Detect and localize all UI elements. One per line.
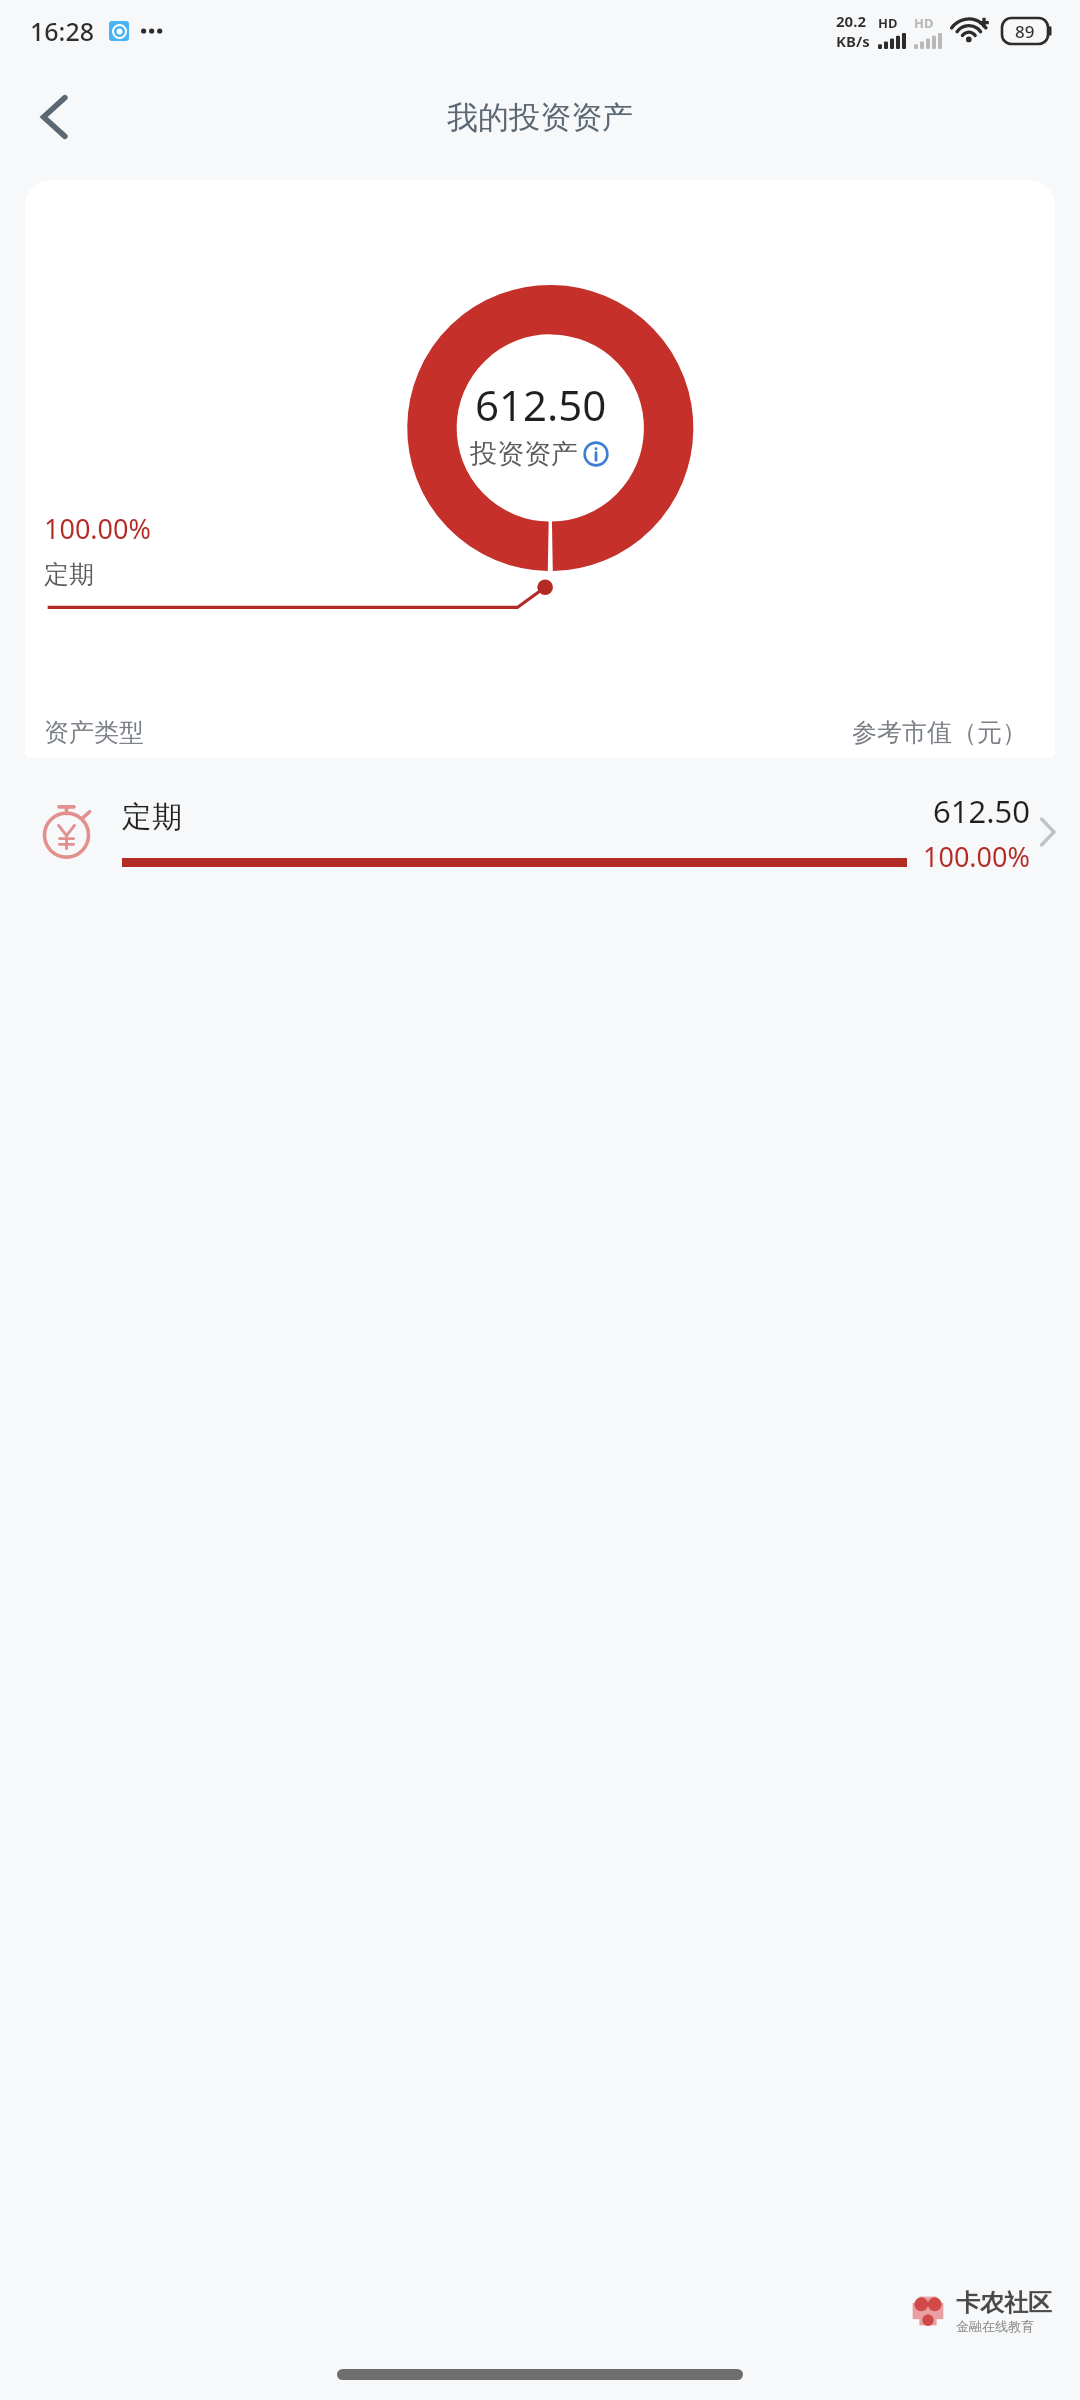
staticText: 参考市值（元）	[852, 717, 1027, 748]
staticText: 612.50	[933, 790, 1030, 832]
button[interactable]: Back	[14, 77, 94, 157]
staticText: 资产类型	[44, 717, 144, 748]
staticText: 20.2	[836, 11, 866, 31]
staticText: KB/s	[836, 31, 870, 51]
staticText: 89	[1015, 20, 1035, 43]
staticText: 我的投资资产	[447, 98, 633, 137]
staticText: 16:28	[30, 14, 95, 48]
staticText: 612.50	[475, 376, 607, 433]
staticText: 定期	[44, 559, 94, 590]
staticText: 100.00%	[923, 838, 1030, 875]
staticText: 卡农社区	[956, 2288, 1052, 2318]
staticText: 金融在线教育	[956, 2318, 1034, 2334]
button[interactable]: 定期	[0, 772, 1080, 892]
staticText: HD	[914, 14, 934, 32]
staticText: 投资资产	[470, 437, 578, 471]
staticText: 100.00%	[44, 510, 151, 547]
staticText: HD	[878, 14, 898, 32]
staticText: 定期	[122, 798, 182, 836]
button[interactable]: Info	[581, 439, 611, 469]
